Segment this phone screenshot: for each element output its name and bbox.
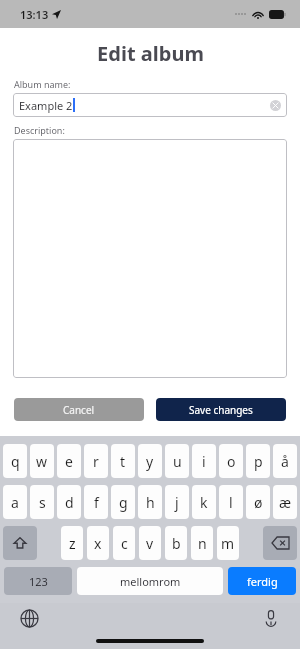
staticText: z	[69, 534, 76, 553]
staticText: t	[120, 452, 126, 471]
staticText: x	[94, 534, 102, 553]
button[interactable]: a	[3, 485, 27, 519]
button[interactable]: Shift	[3, 526, 37, 560]
button[interactable]: x	[87, 526, 109, 560]
staticText: ferdig	[247, 574, 278, 589]
button[interactable]	[13, 139, 287, 378]
staticText: p	[254, 452, 263, 471]
button[interactable]: i	[192, 444, 216, 478]
staticText: f	[94, 493, 99, 512]
button[interactable]: p	[246, 444, 270, 478]
staticText: n	[198, 534, 207, 553]
staticText: v	[146, 534, 154, 553]
button[interactable]: v	[139, 526, 161, 560]
staticText: u	[173, 452, 182, 471]
button[interactable]: w	[30, 444, 54, 478]
button[interactable]: Change keyboard language	[18, 607, 40, 629]
button[interactable]: Cancel	[14, 398, 144, 421]
button[interactable]: m	[217, 526, 239, 560]
button[interactable]: e	[57, 444, 81, 478]
button[interactable]: Voice input	[260, 607, 282, 629]
button[interactable]: ferdig	[228, 567, 296, 595]
staticText: q	[11, 452, 20, 471]
button[interactable]: f	[84, 485, 108, 519]
button[interactable]: u	[165, 444, 189, 478]
button[interactable]: g	[111, 485, 135, 519]
staticText: m	[221, 534, 235, 553]
button[interactable]: Clear text	[270, 100, 281, 111]
staticText: Example 2	[19, 98, 73, 113]
button[interactable]: mellomrom	[77, 567, 223, 595]
staticText: e	[65, 452, 73, 471]
staticText: Album name:	[14, 78, 71, 90]
staticText: å	[281, 452, 289, 471]
button[interactable]: b	[165, 526, 187, 560]
button[interactable]: c	[113, 526, 135, 560]
button[interactable]: r	[84, 444, 108, 478]
staticText: c	[121, 534, 128, 553]
button[interactable]: q	[3, 444, 27, 478]
button[interactable]: Example 2	[13, 93, 287, 117]
staticText: æ	[279, 493, 292, 512]
staticText: a	[11, 493, 19, 512]
staticText: 13:13	[20, 7, 49, 22]
button[interactable]: Save changes	[156, 398, 286, 421]
staticText: Description:	[14, 124, 65, 136]
staticText: b	[172, 534, 181, 553]
button[interactable]: o	[219, 444, 243, 478]
button[interactable]: k	[192, 485, 216, 519]
staticText: w	[36, 452, 48, 471]
button[interactable]: n	[191, 526, 213, 560]
staticText: ø	[254, 493, 263, 512]
staticText: l	[229, 493, 233, 512]
button[interactable]: Backspace	[263, 526, 297, 560]
button[interactable]: d	[57, 485, 81, 519]
button[interactable]: 123	[4, 567, 72, 595]
button[interactable]: y	[138, 444, 162, 478]
button[interactable]: ø	[246, 485, 270, 519]
staticText: d	[65, 493, 74, 512]
staticText: h	[146, 493, 155, 512]
button[interactable]: s	[30, 485, 54, 519]
button[interactable]: t	[111, 444, 135, 478]
button[interactable]: l	[219, 485, 243, 519]
button[interactable]: æ	[273, 485, 297, 519]
button[interactable]: j	[165, 485, 189, 519]
staticText: 123	[29, 574, 48, 589]
staticText: j	[175, 493, 179, 512]
staticText: Edit album	[97, 40, 204, 67]
button[interactable]: z	[61, 526, 83, 560]
staticText: y	[146, 452, 154, 471]
staticText: o	[227, 452, 236, 471]
staticText: Save changes	[189, 403, 253, 417]
button[interactable]: h	[138, 485, 162, 519]
button[interactable]: å	[273, 444, 297, 478]
staticText: Cancel	[63, 403, 95, 417]
staticText: s	[39, 493, 46, 512]
staticText: i	[202, 452, 206, 471]
staticText: g	[119, 493, 128, 512]
staticText: k	[200, 493, 208, 512]
staticText: mellomrom	[120, 574, 181, 589]
staticText: r	[93, 452, 99, 471]
